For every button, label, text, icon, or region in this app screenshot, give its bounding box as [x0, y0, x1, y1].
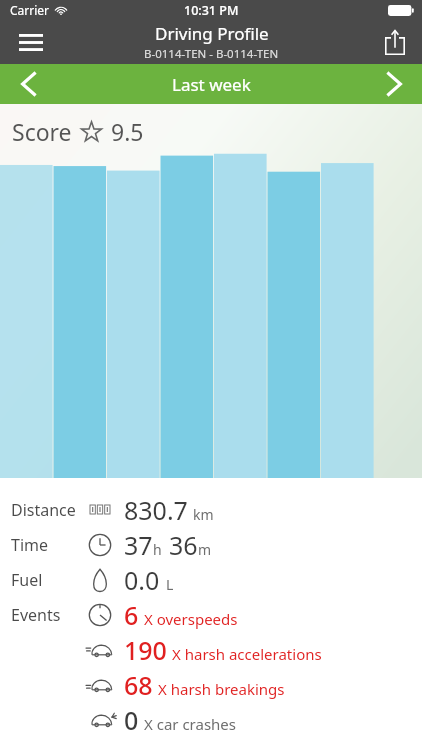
button[interactable]: 68 — [0, 667, 422, 702]
staticText: B-0114-TEN - B-0114-TEN — [144, 46, 279, 62]
staticText: Last week — [172, 73, 251, 96]
button[interactable]: Events — [0, 597, 422, 632]
button[interactable]: Time — [0, 527, 422, 562]
staticText: Score — [12, 116, 72, 147]
button[interactable]: Share — [368, 20, 422, 64]
staticText: X harsh accelerations — [172, 644, 322, 664]
button[interactable]: Fuel — [0, 562, 422, 597]
staticText: 36 — [169, 528, 198, 562]
staticText: 6 — [124, 598, 139, 632]
button[interactable]: Next — [366, 64, 422, 104]
staticText: X harsh breakings — [158, 679, 285, 699]
staticText: Distance — [11, 499, 76, 521]
button[interactable]: Distance — [0, 492, 422, 527]
staticText: Carrier — [10, 2, 50, 18]
staticText: 9.5 — [111, 116, 144, 147]
staticText: Events — [11, 604, 61, 626]
staticText: 68 — [124, 668, 153, 702]
staticText: km — [193, 505, 214, 524]
staticText: Driving Profile — [155, 22, 269, 45]
staticText: X car crashes — [144, 714, 237, 734]
staticText: 0.0 — [124, 563, 160, 597]
button[interactable]: 0 — [0, 702, 422, 737]
staticText: 37 — [124, 528, 153, 562]
staticText: X overspeeds — [144, 609, 238, 629]
staticText: Fuel — [11, 569, 43, 591]
staticText: 190 — [124, 633, 167, 667]
button[interactable]: Previous — [0, 64, 56, 104]
staticText: 0 — [124, 703, 139, 737]
staticText: 10:31 PM — [184, 2, 239, 19]
button[interactable]: 190 — [0, 632, 422, 667]
button[interactable]: Menu — [0, 20, 62, 64]
staticText: Time — [11, 534, 49, 556]
staticText: L — [166, 575, 174, 594]
staticText: m — [198, 540, 212, 559]
staticText: 830.7 — [124, 493, 188, 527]
staticText: h — [153, 540, 162, 559]
